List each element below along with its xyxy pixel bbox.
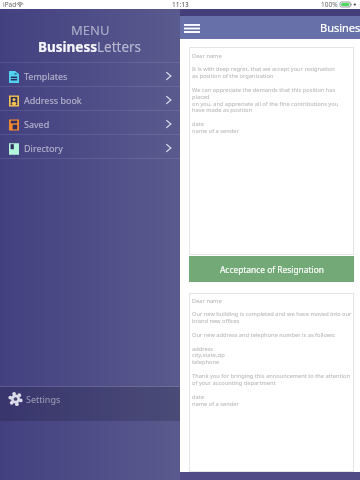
button[interactable]: Open navigation menu [182, 18, 202, 38]
staticText: Settings [26, 393, 61, 405]
staticText: Dear name [192, 52, 222, 60]
staticText: Our new building is completed and we hav… [192, 310, 352, 318]
staticText: 11:13 [172, 0, 189, 9]
button[interactable]: Templates [0, 63, 180, 86]
button[interactable]: Settings [0, 387, 180, 421]
staticText: Thank you for bringing this announcement… [192, 372, 350, 380]
staticText: city,state,zip [192, 351, 225, 359]
staticText: on you, and appreciate all of the fine c… [192, 100, 339, 108]
staticText: of your accounting department [192, 379, 276, 387]
staticText: BusinessLetters [38, 38, 142, 56]
button[interactable]: Address book [0, 87, 180, 110]
staticText: date [192, 393, 204, 401]
staticText: name of a sender [192, 127, 239, 135]
staticText: telephone [192, 358, 220, 366]
staticText: address [192, 345, 214, 353]
staticText: Our new address and telephone number is … [192, 331, 336, 339]
button[interactable]: Directory [0, 135, 180, 158]
staticText: Acceptance of Resignation [220, 264, 324, 275]
staticText: Business [320, 20, 360, 35]
button[interactable]: Saved [0, 111, 180, 134]
staticText: iPad [3, 0, 17, 9]
staticText: placed [192, 93, 210, 101]
staticText: Templates [24, 70, 68, 82]
staticText: MENU [71, 21, 110, 39]
staticText: It is with deep regret, that we accept y… [192, 65, 335, 73]
staticText: 100% [321, 0, 338, 9]
staticText: brand new offices [192, 317, 240, 325]
staticText: We can appreciate the demands that this … [192, 86, 336, 94]
staticText: Saved [24, 118, 50, 130]
staticText: name of a sender [192, 400, 239, 408]
staticText: Directory [24, 142, 63, 154]
staticText: Dear name [192, 297, 222, 305]
button[interactable]: Acceptance of Resignation [189, 256, 354, 282]
staticText: have made as position [192, 106, 252, 114]
staticText: date [192, 120, 204, 128]
staticText: as position of the organization [192, 72, 274, 80]
staticText: Address book [24, 94, 82, 106]
